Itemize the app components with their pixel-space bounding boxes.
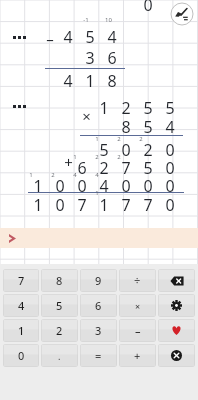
button[interactable]: . xyxy=(41,344,78,367)
staticText: 1 xyxy=(29,171,33,179)
button[interactable]: Clear worksheet xyxy=(170,2,194,26)
staticText: 2 xyxy=(117,153,121,161)
staticText: 1 xyxy=(99,97,109,119)
staticText: 4 xyxy=(63,70,73,92)
button[interactable]: ÷ xyxy=(119,269,156,292)
staticText: 9 xyxy=(95,273,102,288)
staticText: 0 xyxy=(165,139,175,161)
staticText: 0 xyxy=(121,139,131,161)
staticText: – xyxy=(46,29,54,49)
staticText: 6 xyxy=(107,47,117,69)
staticText: 8 xyxy=(121,116,131,138)
staticText: × xyxy=(135,300,141,312)
staticText: 7 xyxy=(121,157,131,179)
staticText: 8 xyxy=(56,273,63,288)
staticText: 0 xyxy=(18,348,25,363)
staticText: 2 xyxy=(121,97,131,119)
staticText: 2 xyxy=(95,153,99,161)
staticText: 7 xyxy=(77,194,87,216)
staticText: 0 xyxy=(165,194,175,216)
staticText: 0 xyxy=(143,0,153,16)
button[interactable]: = xyxy=(80,344,117,367)
button[interactable]: 5 xyxy=(41,294,78,317)
staticText: 0 xyxy=(165,157,175,179)
button[interactable]: 3 xyxy=(80,319,117,342)
staticText: 5 xyxy=(143,116,153,138)
staticText: . xyxy=(58,350,61,362)
staticText: 0 xyxy=(77,175,87,197)
staticText: 4 xyxy=(18,298,25,313)
button[interactable]: Row options xyxy=(8,99,30,113)
button[interactable]: Settings xyxy=(158,294,195,317)
staticText: 0 xyxy=(121,175,131,197)
button[interactable]: 0 xyxy=(3,344,39,367)
staticText: 8 xyxy=(107,70,117,92)
staticText: 2 xyxy=(143,139,153,161)
staticText: -1 xyxy=(83,16,89,24)
staticText: 10 xyxy=(105,16,112,24)
staticText: 1 xyxy=(33,194,43,216)
staticText: 2 xyxy=(139,135,143,143)
staticText: 3 xyxy=(95,323,102,338)
staticText: 7 xyxy=(143,194,153,216)
staticText: 6 xyxy=(95,298,102,313)
staticText: 5 xyxy=(143,157,153,179)
staticText: 4 xyxy=(63,26,73,48)
staticText: 5 xyxy=(56,298,63,313)
staticText: – xyxy=(135,323,141,338)
staticText: 6 xyxy=(77,157,87,179)
button[interactable]: Row options xyxy=(8,30,30,44)
staticText: 1 xyxy=(95,189,99,197)
button[interactable]: 8 xyxy=(41,269,78,292)
staticText: 4 xyxy=(73,171,77,179)
staticText: 4 xyxy=(165,116,175,138)
button[interactable]: × xyxy=(119,294,156,317)
staticText: 5 xyxy=(165,97,175,119)
staticText: 3 xyxy=(85,47,95,69)
staticText: + xyxy=(64,152,73,172)
staticText: + xyxy=(134,348,141,363)
staticText: 1 xyxy=(73,153,77,161)
staticText: 2 xyxy=(99,157,109,179)
staticText: 0 xyxy=(55,175,65,197)
button[interactable]: 9 xyxy=(80,269,117,292)
staticText: 4 xyxy=(95,171,99,179)
staticText: 2 xyxy=(51,171,55,179)
staticText: 4 xyxy=(107,26,117,48)
button[interactable]: 7 xyxy=(3,269,39,292)
staticText: 7 xyxy=(121,194,131,216)
staticText: 1 xyxy=(85,70,95,92)
staticText: 7 xyxy=(18,273,25,288)
button[interactable]: – xyxy=(119,319,156,342)
staticText: ÷ xyxy=(134,273,141,288)
staticText: = xyxy=(95,348,102,363)
button[interactable]: 4 xyxy=(3,294,39,317)
staticText: 2 xyxy=(117,135,121,143)
staticText: 5 xyxy=(143,97,153,119)
button[interactable]: 2 xyxy=(41,319,78,342)
staticText: 5 xyxy=(85,26,95,48)
staticText: 0 xyxy=(143,175,153,197)
button[interactable] xyxy=(0,228,198,248)
staticText: 0 xyxy=(55,194,65,216)
button[interactable]: Favourite xyxy=(158,319,195,342)
button[interactable]: Close xyxy=(158,344,195,367)
staticText: × xyxy=(82,106,91,126)
staticText: 0 xyxy=(165,175,175,197)
staticText: 1 xyxy=(33,175,43,197)
button[interactable]: 6 xyxy=(80,294,117,317)
staticText: 5 xyxy=(99,139,109,161)
staticText: 4 xyxy=(99,175,109,197)
staticText: 1 xyxy=(18,323,25,338)
button[interactable]: Backspace xyxy=(158,269,195,292)
staticText: 2 xyxy=(56,323,63,338)
button[interactable]: + xyxy=(119,344,156,367)
staticText: 1 xyxy=(95,135,99,143)
button[interactable]: 1 xyxy=(3,319,39,342)
staticText: 1 xyxy=(99,194,109,216)
